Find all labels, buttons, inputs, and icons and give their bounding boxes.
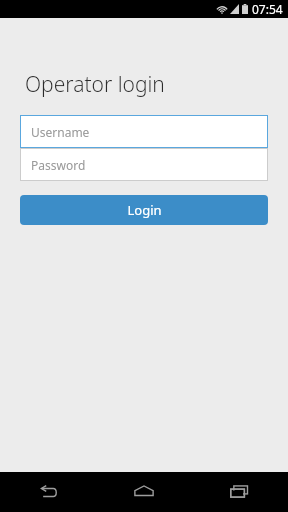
button[interactable]: Login [20,195,268,225]
staticText: Login [127,201,162,219]
button[interactable]: Back [0,472,96,512]
button[interactable]: Home [96,472,192,512]
staticText: Username [31,124,90,140]
staticText: 07:54 [252,1,283,17]
staticText: Operator login [25,70,165,99]
staticText: Password [31,157,86,173]
button[interactable]: Username [20,115,268,148]
button[interactable]: Recent apps [192,472,288,512]
button[interactable]: Password [20,148,268,181]
